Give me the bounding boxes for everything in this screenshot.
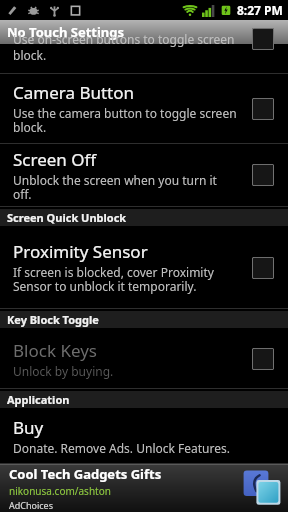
staticText: Application xyxy=(7,392,70,407)
staticText: nikonusa.com/ashton xyxy=(9,484,111,498)
button[interactable]: Screen Off checkbox xyxy=(252,164,274,186)
other: Advertisement xyxy=(242,468,282,508)
button[interactable]: Camera Button xyxy=(0,74,288,144)
staticText: Screen Off xyxy=(13,148,97,171)
staticText: Key Block Toggle xyxy=(7,312,99,327)
staticText: block. xyxy=(13,47,47,60)
staticText: 8:27 PM xyxy=(237,2,283,18)
staticText: Block Keys xyxy=(13,339,97,362)
button[interactable]: Buy xyxy=(0,409,288,464)
staticText: Use the camera button to toggle screen b… xyxy=(13,105,237,136)
staticText: Unblock the screen when you turn it off. xyxy=(13,172,217,203)
staticText: Use on-screen buttons to toggle screen xyxy=(13,31,235,47)
staticText: Buy xyxy=(13,416,44,439)
button[interactable]: Proximity Sensor xyxy=(0,227,288,309)
staticText: Screen Quick Unblock xyxy=(7,210,127,225)
staticText: Camera Button xyxy=(13,81,135,104)
button[interactable]: Cool Tech Gadgets Gifts xyxy=(0,464,288,512)
button[interactable]: Block Keys checkbox xyxy=(252,348,274,370)
button[interactable]: Block Keys xyxy=(0,329,288,389)
staticText: Donate. Remove Ads. Unlock Features. xyxy=(13,440,230,456)
staticText: No Touch Settings xyxy=(7,23,125,41)
staticText: AdChoices xyxy=(9,499,54,511)
button[interactable]: Screen Off xyxy=(0,144,288,207)
staticText: If screen is blocked, cover Proximity Se… xyxy=(13,264,214,295)
staticText: Unlock by buying. xyxy=(13,363,114,379)
button[interactable]: Use on-screen buttons to toggle screen xyxy=(0,44,288,74)
staticText: Proximity Sensor xyxy=(13,240,148,263)
button[interactable]: Camera Button checkbox xyxy=(252,98,274,120)
staticText: Cool Tech Gadgets Gifts xyxy=(9,465,162,483)
button[interactable]: Proximity Sensor checkbox xyxy=(252,257,274,279)
